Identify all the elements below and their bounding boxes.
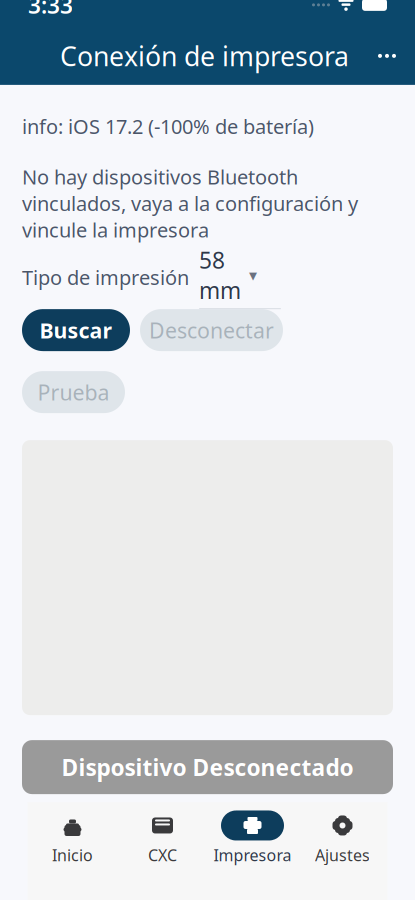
staticText: Desconectar [149,316,274,344]
staticText: 58 mm [199,245,241,305]
button[interactable]: Prueba [22,371,125,413]
staticText: Tipo de impresión [22,264,189,290]
button[interactable]: Ajustes [297,811,387,865]
staticText: CXC [148,844,177,866]
button[interactable]: Dispositivo Desconectado [22,740,393,794]
staticText: Prueba [37,378,109,406]
staticText: Conexión de impresora [60,38,349,74]
staticText: Ajustes [315,844,370,866]
button[interactable]: CXC [117,811,207,865]
button[interactable]: 58 mm [197,261,283,293]
button[interactable]: Impresora [207,811,297,865]
staticText: 3:33 [28,0,73,20]
button[interactable]: Inicio [27,811,117,865]
staticText: Dispositivo Desconectado [61,752,353,782]
staticText: ▾ [249,266,257,284]
staticText: Inicio [52,844,93,866]
staticText: info: iOS 17.2 (-100% de batería) [22,113,314,139]
button[interactable]: Desconectar [140,309,283,351]
button[interactable]: Más opciones [365,34,409,78]
staticText: No hay dispositivos Bluetooth vinculados… [22,163,358,243]
staticText: Buscar [39,316,112,344]
staticText: Impresora [213,844,291,866]
button[interactable]: Buscar [22,309,130,351]
